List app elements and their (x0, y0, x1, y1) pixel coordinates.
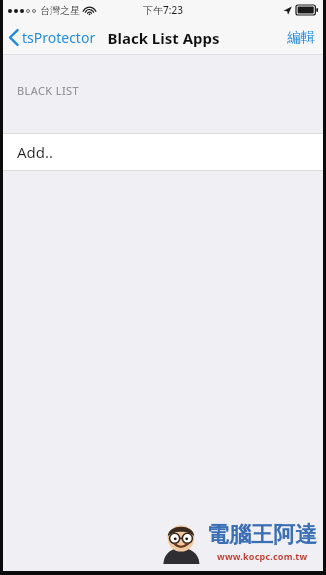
staticText: tsProtector (22, 28, 96, 47)
button[interactable]: tsProtector (3, 24, 102, 51)
staticText: 下午7:23 (143, 3, 183, 17)
staticText: 編輯 (287, 29, 315, 47)
button[interactable]: 編輯 (279, 25, 323, 51)
staticText: www.kocpc.com.tw (217, 550, 308, 562)
staticText: Black List Apps (107, 28, 220, 48)
staticText: BLACK LIST (17, 83, 79, 98)
staticText: Add.. (17, 142, 54, 162)
staticText: 台灣之星 (40, 4, 80, 17)
button[interactable]: Add.. (3, 134, 323, 170)
staticText: 電腦王阿達 (207, 521, 317, 549)
